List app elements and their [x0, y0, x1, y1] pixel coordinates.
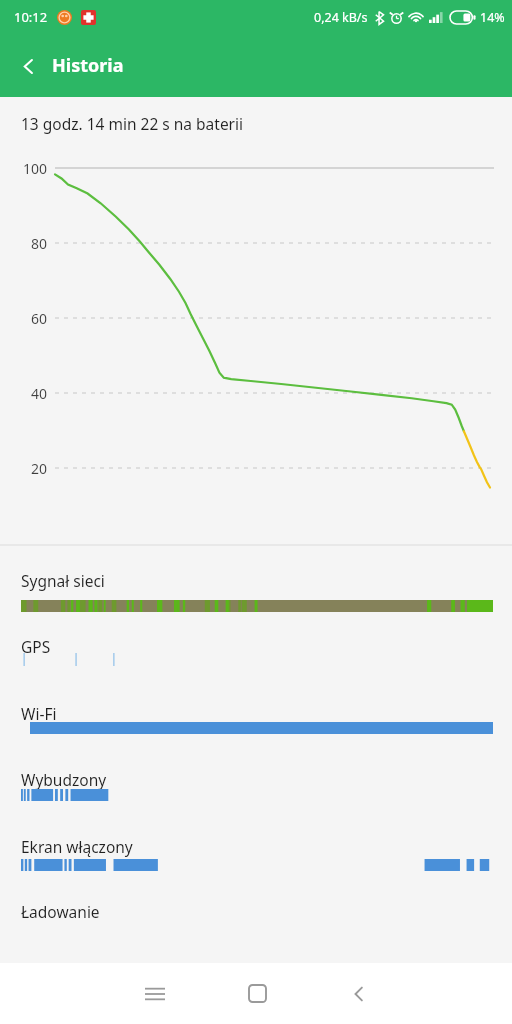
- staticText: 13 godz. 14 min 22 s na baterii: [21, 113, 244, 134]
- staticText: Sygnał sieci: [21, 570, 105, 591]
- staticText: Ładowanie: [21, 901, 100, 922]
- staticText: 14%: [480, 9, 505, 26]
- staticText: 20: [0, 459, 47, 478]
- staticText: 0,24 kB/s: [314, 9, 368, 26]
- button[interactable]: Back: [308, 963, 410, 1024]
- staticText: 60: [0, 309, 47, 328]
- staticText: 80: [0, 234, 47, 253]
- staticText: 100: [0, 159, 47, 178]
- button[interactable]: Recent apps: [103, 963, 206, 1024]
- staticText: Ekran włączony: [21, 836, 133, 857]
- button[interactable]: Back: [6, 44, 50, 88]
- staticText: Wybudzony: [21, 769, 107, 790]
- staticText: Wi-Fi: [21, 703, 57, 724]
- staticText: GPS: [21, 636, 51, 657]
- staticText: 40: [0, 384, 47, 403]
- button[interactable]: Home: [206, 963, 308, 1024]
- staticText: 10:12: [14, 8, 48, 26]
- staticText: Historia: [52, 53, 124, 78]
